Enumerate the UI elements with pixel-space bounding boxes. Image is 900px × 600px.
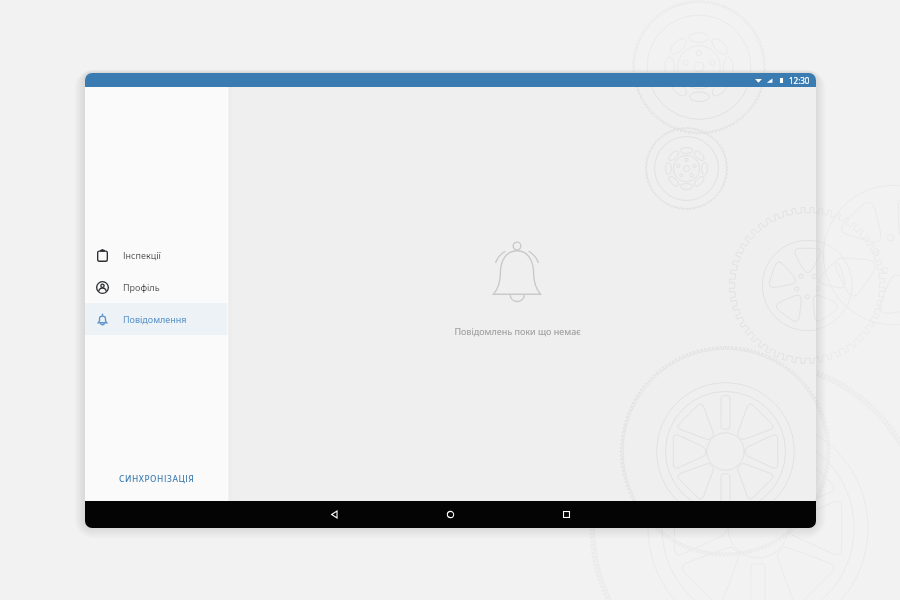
button[interactable]: СИНХРОНІЗАЦІЯ (85, 463, 228, 493)
staticText: Профіль (123, 281, 160, 293)
staticText: 12:30 (789, 75, 810, 86)
button[interactable]: Повідомлення (85, 303, 228, 335)
button[interactable]: Home (437, 501, 464, 528)
button[interactable]: Профіль (85, 271, 228, 303)
staticText: Повідомлень поки що немає (454, 325, 581, 337)
button[interactable]: Recents (553, 501, 580, 528)
button[interactable]: Back (321, 501, 348, 528)
staticText: Повідомлення (123, 313, 187, 325)
staticText: Інспекції (123, 249, 161, 261)
button[interactable]: Інспекції (85, 239, 228, 271)
staticText: СИНХРОНІЗАЦІЯ (119, 473, 195, 484)
